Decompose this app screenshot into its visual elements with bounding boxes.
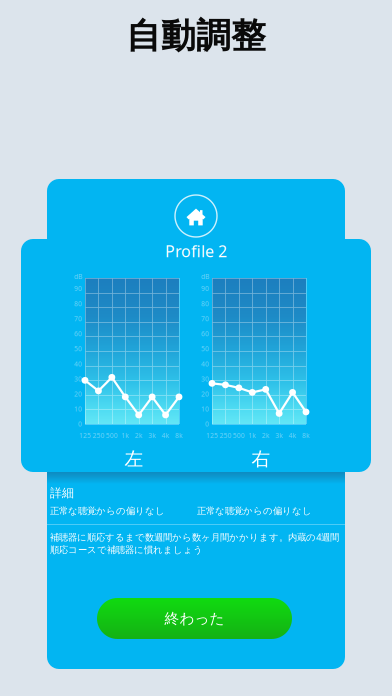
staticText: 70 <box>74 314 82 323</box>
staticText: 10 <box>201 404 209 413</box>
staticText: 1k <box>121 431 129 440</box>
staticText: 8k <box>175 431 183 440</box>
staticText: 20 <box>74 389 82 398</box>
staticText: 10 <box>74 404 82 413</box>
staticText: 250 <box>92 431 104 440</box>
staticText: 60 <box>74 329 82 338</box>
staticText: 4k <box>162 431 170 440</box>
staticText: 125 <box>79 431 91 440</box>
staticText: 40 <box>74 359 82 368</box>
staticText: 正常な聴覚からの偏りなし <box>50 505 165 517</box>
staticText: 70 <box>201 314 209 323</box>
staticText: 20 <box>201 389 209 398</box>
staticText: 90 <box>201 284 209 293</box>
staticText: dB <box>74 272 82 281</box>
staticText: 30 <box>74 374 82 383</box>
staticText: dB <box>201 272 209 281</box>
staticText: 2k <box>135 431 143 440</box>
staticText: 8k <box>302 431 310 440</box>
staticText: 0 <box>205 420 209 428</box>
staticText: 125 <box>206 431 218 440</box>
staticText: 3k <box>148 431 156 440</box>
staticText: 60 <box>201 329 209 338</box>
staticText: 終わった <box>164 609 224 627</box>
staticText: 30 <box>201 374 209 383</box>
staticText: 4k <box>289 431 297 440</box>
staticText: 90 <box>74 284 82 293</box>
staticText: 0 <box>78 420 82 428</box>
staticText: 詳細 <box>50 486 74 500</box>
staticText: 50 <box>201 344 209 353</box>
staticText: 50 <box>74 344 82 353</box>
staticText: 正常な聴覚からの偏りなし <box>197 505 312 517</box>
staticText: 80 <box>201 299 209 308</box>
staticText: 補聴器に順応するまで数週間から数ヶ月間かかります。内蔵の4週間 <box>50 531 339 543</box>
staticText: Profile 2 <box>165 240 227 262</box>
staticText: 250 <box>219 431 231 440</box>
staticText: 500 <box>106 431 118 440</box>
staticText: 80 <box>74 299 82 308</box>
staticText: 右 <box>251 447 270 470</box>
staticText: 1k <box>248 431 256 440</box>
staticText: 順応コースで補聴器に慣れましょう <box>50 544 203 556</box>
button[interactable]: Home <box>172 192 220 240</box>
staticText: 自動調整 <box>126 15 266 57</box>
staticText: 3k <box>275 431 283 440</box>
staticText: 2k <box>262 431 270 440</box>
staticText: 40 <box>201 359 209 368</box>
staticText: 500 <box>233 431 245 440</box>
button[interactable]: 終わった <box>97 598 292 639</box>
staticText: 左 <box>124 447 143 470</box>
